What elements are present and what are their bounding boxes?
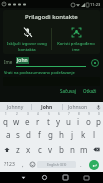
button[interactable]: 0 xyxy=(93,112,103,127)
button[interactable]: 4 xyxy=(33,112,43,127)
button[interactable]: Backspace xyxy=(89,142,103,157)
staticText: Otkaži xyxy=(83,88,97,94)
button[interactable]: ?123 xyxy=(1,157,18,172)
staticText: b xyxy=(59,144,64,155)
button[interactable]: Voice input xyxy=(93,102,103,112)
staticText: v xyxy=(48,144,53,155)
button[interactable]: v xyxy=(45,142,56,157)
staticText: Sačuvaj xyxy=(60,88,76,94)
button[interactable]: x xyxy=(23,142,34,157)
staticText: n xyxy=(70,144,75,155)
button[interactable]: 9 xyxy=(83,112,93,127)
button[interactable]: . xyxy=(76,157,85,172)
staticText: s xyxy=(16,129,20,140)
staticText: Johnson xyxy=(68,104,88,111)
button[interactable]: Enter xyxy=(89,160,99,170)
button[interactable]: Home xyxy=(34,172,55,183)
button[interactable]: , xyxy=(18,157,27,172)
staticText: ?123 xyxy=(4,161,15,168)
button[interactable]: John xyxy=(32,102,62,112)
staticText: 2 xyxy=(16,112,18,116)
staticText: . xyxy=(80,161,82,169)
staticText: u xyxy=(66,116,71,127)
button[interactable]: Keyboard xyxy=(76,172,97,183)
staticText: h xyxy=(59,129,64,140)
staticText: Johnny xyxy=(7,104,24,111)
staticText: r xyxy=(36,116,40,127)
button[interactable]: b xyxy=(56,142,67,157)
button[interactable]: 5 xyxy=(43,112,53,127)
button[interactable]: Back xyxy=(13,172,34,183)
button[interactable]: z xyxy=(13,142,23,157)
button[interactable]: a xyxy=(3,127,13,142)
button[interactable]: 2 xyxy=(11,112,22,127)
button[interactable]: 8 xyxy=(73,112,83,127)
staticText: English (US) xyxy=(47,162,67,167)
button[interactable]: g xyxy=(45,127,56,142)
staticText: y xyxy=(56,116,61,127)
button[interactable]: Johnson xyxy=(63,102,93,112)
staticText: g xyxy=(48,129,53,140)
staticText: t xyxy=(47,116,50,127)
staticText: John xyxy=(41,104,53,111)
staticText: 1 xyxy=(5,112,7,116)
button[interactable]: k xyxy=(78,127,89,142)
staticText: w xyxy=(13,116,20,127)
staticText: c xyxy=(38,144,42,155)
staticText: l xyxy=(93,129,96,140)
button[interactable]: l xyxy=(89,127,100,142)
button[interactable]: Mute pronunciation xyxy=(3,24,51,54)
staticText: k xyxy=(81,129,86,140)
staticText: e xyxy=(25,116,30,127)
staticText: 6 xyxy=(58,112,60,116)
staticText: f xyxy=(38,129,41,140)
staticText: x xyxy=(26,144,31,155)
staticText: Ime xyxy=(4,59,13,65)
staticText: p xyxy=(96,116,101,127)
staticText: m xyxy=(80,144,88,155)
button[interactable]: 1 xyxy=(0,112,11,127)
staticText: 7 xyxy=(68,112,70,116)
staticText: q xyxy=(3,116,8,127)
button[interactable]: Recents xyxy=(55,172,76,183)
button[interactable]: 3 xyxy=(22,112,33,127)
staticText: 9 xyxy=(88,112,90,116)
staticText: j xyxy=(71,129,74,140)
staticText: i xyxy=(77,116,80,127)
button[interactable]: n xyxy=(67,142,78,157)
staticText: 11:23 xyxy=(90,2,101,7)
button[interactable]: Otkaži xyxy=(81,87,99,95)
staticText: 8 xyxy=(78,112,80,116)
other: Use custom name xyxy=(71,27,82,38)
button[interactable]: Sačuvaj xyxy=(58,87,78,95)
button[interactable]: 7 xyxy=(63,112,73,127)
staticText: 3 xyxy=(27,112,29,116)
button[interactable]: Emoji xyxy=(27,157,37,172)
staticText: Vrati na podrazumevano podešavanje xyxy=(4,70,75,75)
staticText: 0 xyxy=(98,112,100,116)
staticText: z xyxy=(16,144,20,155)
button[interactable]: Shift xyxy=(0,142,13,157)
button[interactable]: 6 xyxy=(53,112,63,127)
button[interactable]: d xyxy=(23,127,34,142)
button[interactable]: h xyxy=(56,127,67,142)
button[interactable]: j xyxy=(67,127,78,142)
staticText: 5 xyxy=(48,112,50,116)
button[interactable]: Reset name xyxy=(90,58,99,67)
staticText: 4 xyxy=(37,112,39,116)
button[interactable]: s xyxy=(13,127,23,142)
staticText: John xyxy=(17,57,28,64)
button[interactable]: f xyxy=(34,127,45,142)
button[interactable]: c xyxy=(34,142,45,157)
button[interactable]: m xyxy=(78,142,89,157)
staticText: Prilagodi kontakte xyxy=(25,13,78,21)
other: Mute pronunciation xyxy=(22,27,33,38)
staticText: , xyxy=(22,161,24,169)
button[interactable]: English (US) xyxy=(37,161,76,168)
button[interactable]: Johnny xyxy=(0,102,31,112)
staticText: o xyxy=(86,116,91,127)
button[interactable]: Use custom name xyxy=(52,24,100,54)
staticText: Isključi izgovor ovog kontakta xyxy=(7,41,47,52)
staticText: d xyxy=(26,129,31,140)
